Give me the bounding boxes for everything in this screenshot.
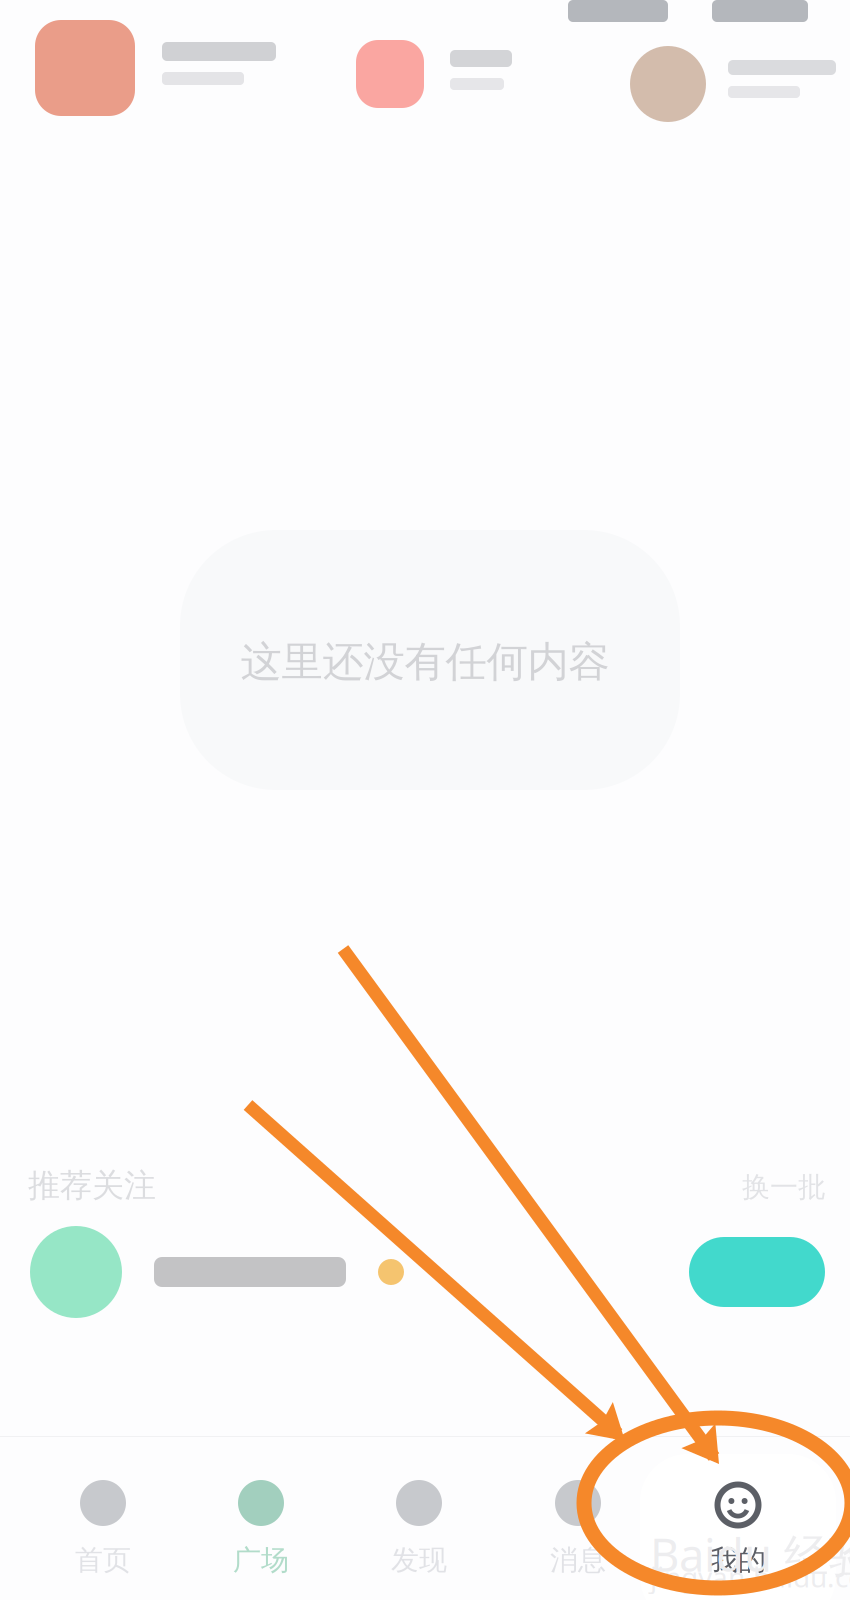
staticText: 推荐关注 <box>28 1166 156 1205</box>
button[interactable] <box>0 1204 850 1340</box>
button[interactable]: 发现 <box>340 1436 498 1600</box>
button[interactable]: 消息 <box>499 1436 657 1600</box>
staticText: jingyan.baidu.com <box>650 1558 850 1595</box>
button[interactable] <box>0 0 300 130</box>
staticText: 首页 <box>75 1543 131 1577</box>
staticText: 换一批 <box>742 1170 826 1204</box>
button[interactable]: 首页 <box>24 1436 182 1600</box>
button[interactable] <box>354 34 584 144</box>
staticText: Baidu 经验 <box>650 1524 850 1584</box>
button[interactable] <box>630 44 850 154</box>
staticText: 这里还没有任何内容 <box>240 637 609 687</box>
staticText: 广场 <box>233 1543 289 1577</box>
staticText: 消息 <box>550 1543 606 1577</box>
button[interactable]: 我的 <box>659 1436 817 1600</box>
staticText: 发现 <box>391 1543 447 1577</box>
staticText: 我的 <box>710 1543 766 1577</box>
button[interactable]: 广场 <box>182 1436 340 1600</box>
